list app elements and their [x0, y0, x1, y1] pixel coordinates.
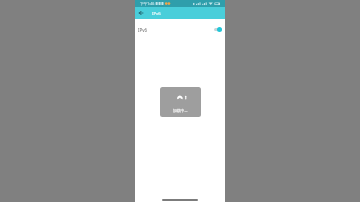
staticText: IPv6: [152, 10, 161, 16]
button[interactable]: Back: [135, 7, 147, 19]
staticText: IPv6: [138, 27, 147, 33]
button[interactable]: Toggle IPv6: [214, 27, 222, 32]
staticText: 加载中...: [173, 108, 188, 113]
staticText: 下午1:46: [140, 1, 155, 6]
button[interactable]: IPv6: [135, 19, 225, 36]
